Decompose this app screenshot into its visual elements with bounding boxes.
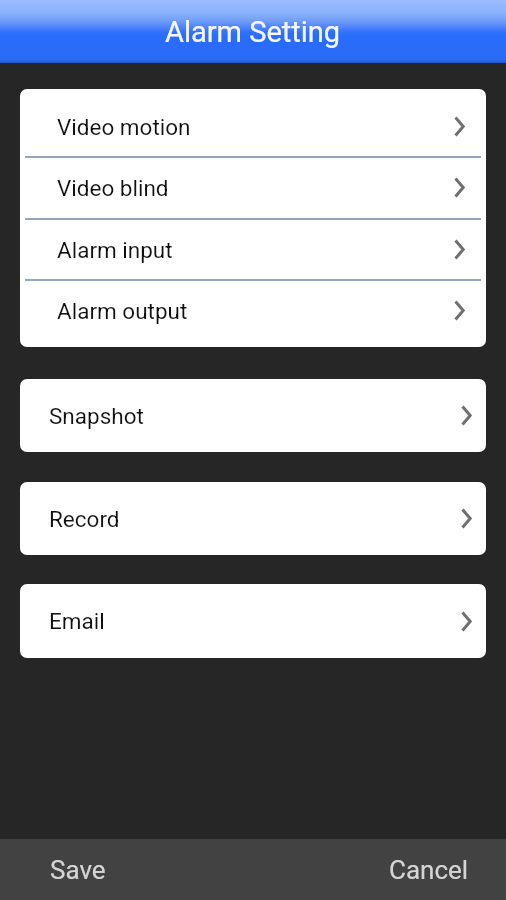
button[interactable]: Alarm input — [20, 219, 486, 280]
staticText: Save — [50, 855, 106, 885]
button[interactable]: Save — [0, 839, 155, 900]
button[interactable]: Snapshot — [20, 385, 486, 446]
button[interactable]: Video blind — [20, 157, 486, 218]
staticText: Alarm output — [57, 298, 188, 324]
staticText: Snapshot — [49, 403, 144, 429]
staticText: Alarm Setting — [165, 15, 341, 49]
button[interactable]: Alarm output — [20, 280, 486, 341]
staticText: Alarm input — [57, 237, 173, 263]
button[interactable]: Video motion — [20, 96, 486, 157]
button[interactable]: Cancel — [351, 839, 506, 900]
staticText: Record — [49, 506, 120, 532]
button[interactable]: Record — [20, 488, 486, 549]
staticText: Cancel — [389, 855, 469, 885]
button[interactable]: Email — [20, 590, 486, 652]
staticText: Video motion — [57, 114, 191, 140]
staticText: Video blind — [57, 175, 169, 201]
staticText: Email — [49, 608, 105, 634]
